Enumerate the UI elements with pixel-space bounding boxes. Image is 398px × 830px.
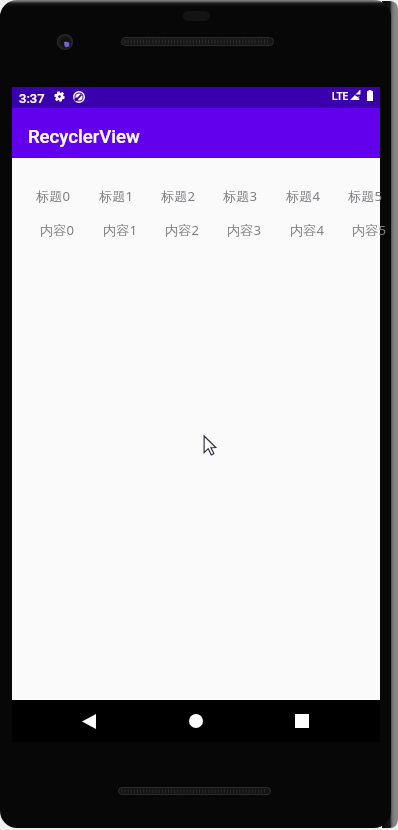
staticText: 标题5 (348, 187, 382, 205)
button[interactable]: 标题4 (272, 158, 334, 239)
button[interactable]: Back (74, 706, 104, 736)
button[interactable]: 标题0 (22, 158, 84, 239)
staticText: 标题4 (286, 187, 320, 205)
staticText: RecyclerView (28, 126, 140, 148)
staticText: LTE (332, 91, 349, 103)
button[interactable]: 标题2 (147, 158, 209, 239)
staticText: 标题2 (161, 187, 195, 205)
staticText: 内容4 (290, 221, 324, 239)
button[interactable]: Recents (287, 706, 317, 736)
staticText: 标题0 (36, 187, 70, 205)
button[interactable]: RecyclerView (12, 108, 380, 158)
button[interactable]: 标题3 (209, 158, 271, 239)
staticText: 内容3 (227, 221, 261, 239)
staticText: 3:37 (19, 91, 45, 106)
button[interactable]: 标题5 (334, 158, 396, 239)
button[interactable]: Home (181, 706, 211, 736)
staticText: 内容5 (352, 221, 386, 239)
staticText: 内容1 (103, 221, 137, 239)
button[interactable]: 标题1 (85, 158, 147, 239)
staticText: 标题1 (99, 187, 133, 205)
staticText: 内容2 (165, 221, 199, 239)
staticText: 内容0 (40, 221, 74, 239)
staticText: 标题3 (223, 187, 257, 205)
